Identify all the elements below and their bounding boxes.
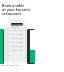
staticText: Book a table — [2, 3, 25, 8]
staticText: restaurant — [2, 11, 22, 16]
staticText: at your favorite — [2, 7, 31, 12]
button[interactable] — [30, 30, 35, 63]
